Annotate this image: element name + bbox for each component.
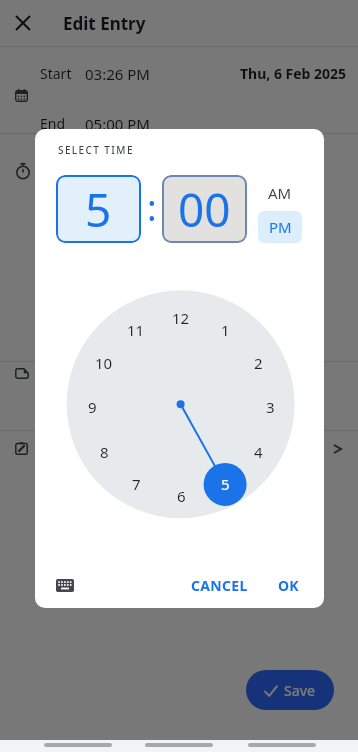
staticText: 7 xyxy=(132,474,141,494)
staticText: 10 xyxy=(95,353,113,373)
staticText: 9 xyxy=(88,397,97,417)
button[interactable]: 03:26 PM xyxy=(85,64,150,84)
button[interactable]: 05:00 PM xyxy=(85,114,150,134)
staticText: Start xyxy=(40,64,72,83)
staticText: 5 xyxy=(85,178,112,241)
staticText: 4 xyxy=(254,442,263,462)
staticText: OK xyxy=(278,576,299,595)
staticText: 2 xyxy=(254,353,263,373)
button[interactable]: AM xyxy=(258,177,302,209)
button[interactable]: PM xyxy=(258,211,302,243)
staticText: 1 xyxy=(221,320,230,340)
staticText: 8 xyxy=(100,442,109,462)
staticText: SELECT TIME xyxy=(58,143,134,157)
button[interactable] xyxy=(0,0,46,46)
staticText: AM xyxy=(268,183,292,203)
staticText: PM xyxy=(269,217,292,237)
staticText: 12 xyxy=(172,308,190,328)
button[interactable]: Save xyxy=(246,670,334,710)
staticText: 5 xyxy=(221,474,230,494)
button[interactable]: 00 xyxy=(162,175,247,243)
button[interactable]: CANCEL xyxy=(174,567,264,603)
staticText: 00 xyxy=(178,178,231,241)
staticText: Save xyxy=(284,681,316,700)
button[interactable] xyxy=(52,574,78,596)
button[interactable]: 5 xyxy=(56,175,141,243)
staticText: 3 xyxy=(266,397,275,417)
staticText: : xyxy=(147,183,157,232)
staticText: Edit Entry xyxy=(63,12,146,35)
staticText: 6 xyxy=(177,486,186,506)
staticText: CANCEL xyxy=(191,576,248,595)
button[interactable]: Thu, 6 Feb 2025 xyxy=(240,64,347,83)
staticText: 11 xyxy=(127,320,145,340)
staticText: End xyxy=(40,114,66,133)
button[interactable]: OK xyxy=(268,567,308,603)
